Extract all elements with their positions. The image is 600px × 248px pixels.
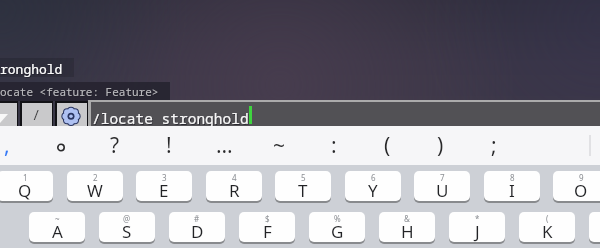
staticText: # xyxy=(194,213,200,224)
button[interactable]: ( xyxy=(519,212,575,242)
staticText: ronghold xyxy=(1,61,64,79)
button[interactable]: # xyxy=(169,212,225,242)
button[interactable]: & xyxy=(379,212,435,242)
staticText: ? xyxy=(110,131,120,160)
button[interactable]: ) xyxy=(422,126,458,165)
button[interactable]: 5 xyxy=(275,171,331,201)
staticText: ~ xyxy=(273,131,286,160)
staticText: 6 xyxy=(371,172,376,183)
staticText: F xyxy=(263,220,272,242)
staticText: , xyxy=(4,131,10,160)
staticText: ocate <feature: Feature> xyxy=(0,84,159,99)
staticText: 3 xyxy=(162,172,167,183)
button[interactable]: … xyxy=(206,126,242,165)
staticText: R xyxy=(229,179,240,201)
button[interactable]: 8 xyxy=(484,171,540,201)
staticText: Y xyxy=(368,179,378,201)
staticText: I xyxy=(509,179,515,201)
button[interactable]: ~ xyxy=(261,126,297,165)
staticText: 4 xyxy=(232,172,237,183)
button[interactable]: ; xyxy=(476,126,512,165)
button[interactable]: , xyxy=(0,126,25,165)
staticText: ! xyxy=(166,131,172,160)
button[interactable]: 2 xyxy=(67,171,123,201)
button[interactable]: 3 xyxy=(136,171,192,201)
staticText: /locate stronghold xyxy=(92,108,249,128)
staticText: ocate <feature: Feature> xyxy=(1,85,160,100)
staticText: ; xyxy=(491,131,497,160)
button[interactable]: $ xyxy=(239,212,295,242)
button[interactable]: : xyxy=(316,126,352,165)
button[interactable]: * xyxy=(449,212,505,242)
button[interactable]: 1 xyxy=(0,171,53,201)
staticText: : xyxy=(331,131,337,160)
staticText: 9 xyxy=(579,172,584,183)
button[interactable]: @ xyxy=(99,212,155,242)
staticText: U xyxy=(436,179,449,201)
button[interactable] xyxy=(55,101,88,127)
staticText: 1 xyxy=(23,172,28,183)
staticText: S xyxy=(122,220,132,242)
staticText: % xyxy=(334,213,341,224)
button[interactable]: 4 xyxy=(206,171,262,201)
staticText: D xyxy=(191,220,204,242)
button[interactable] xyxy=(43,126,79,165)
staticText: J xyxy=(475,220,480,242)
button[interactable]: ! xyxy=(151,126,187,165)
staticText: & xyxy=(404,213,410,224)
staticText: 5 xyxy=(301,172,306,183)
staticText: ronghold xyxy=(0,60,63,78)
staticText: / xyxy=(32,105,41,124)
staticText: ~ xyxy=(55,213,60,224)
button[interactable]: ? xyxy=(97,126,133,165)
staticText: O xyxy=(574,179,588,201)
staticText: ( xyxy=(546,213,549,224)
staticText: G xyxy=(331,220,344,242)
staticText: E xyxy=(159,179,169,201)
button[interactable]: ( xyxy=(369,126,405,165)
staticText: ) xyxy=(437,131,444,160)
button[interactable]: 9 xyxy=(553,171,600,201)
staticText: ( xyxy=(384,131,391,160)
staticText: … xyxy=(216,131,233,160)
staticText: T xyxy=(298,179,308,201)
staticText: $ xyxy=(265,213,270,224)
staticText: 7 xyxy=(440,172,445,183)
staticText: 2 xyxy=(93,172,98,183)
button[interactable]: % xyxy=(309,212,365,242)
button[interactable]: / xyxy=(20,101,53,127)
staticText: /locate stronghold xyxy=(93,109,250,129)
button[interactable]: 6 xyxy=(345,171,401,201)
staticText: 8 xyxy=(510,172,515,183)
staticText: A xyxy=(52,220,63,242)
staticText: * xyxy=(475,213,480,224)
button[interactable] xyxy=(0,101,18,127)
button[interactable]: ) xyxy=(589,212,600,242)
staticText: W xyxy=(87,179,103,201)
staticText: H xyxy=(401,220,414,242)
staticText: @ xyxy=(123,213,131,224)
button[interactable]: ~ xyxy=(29,212,85,242)
staticText: K xyxy=(542,220,553,242)
button[interactable]: 7 xyxy=(414,171,470,201)
staticText: Q xyxy=(18,179,32,201)
